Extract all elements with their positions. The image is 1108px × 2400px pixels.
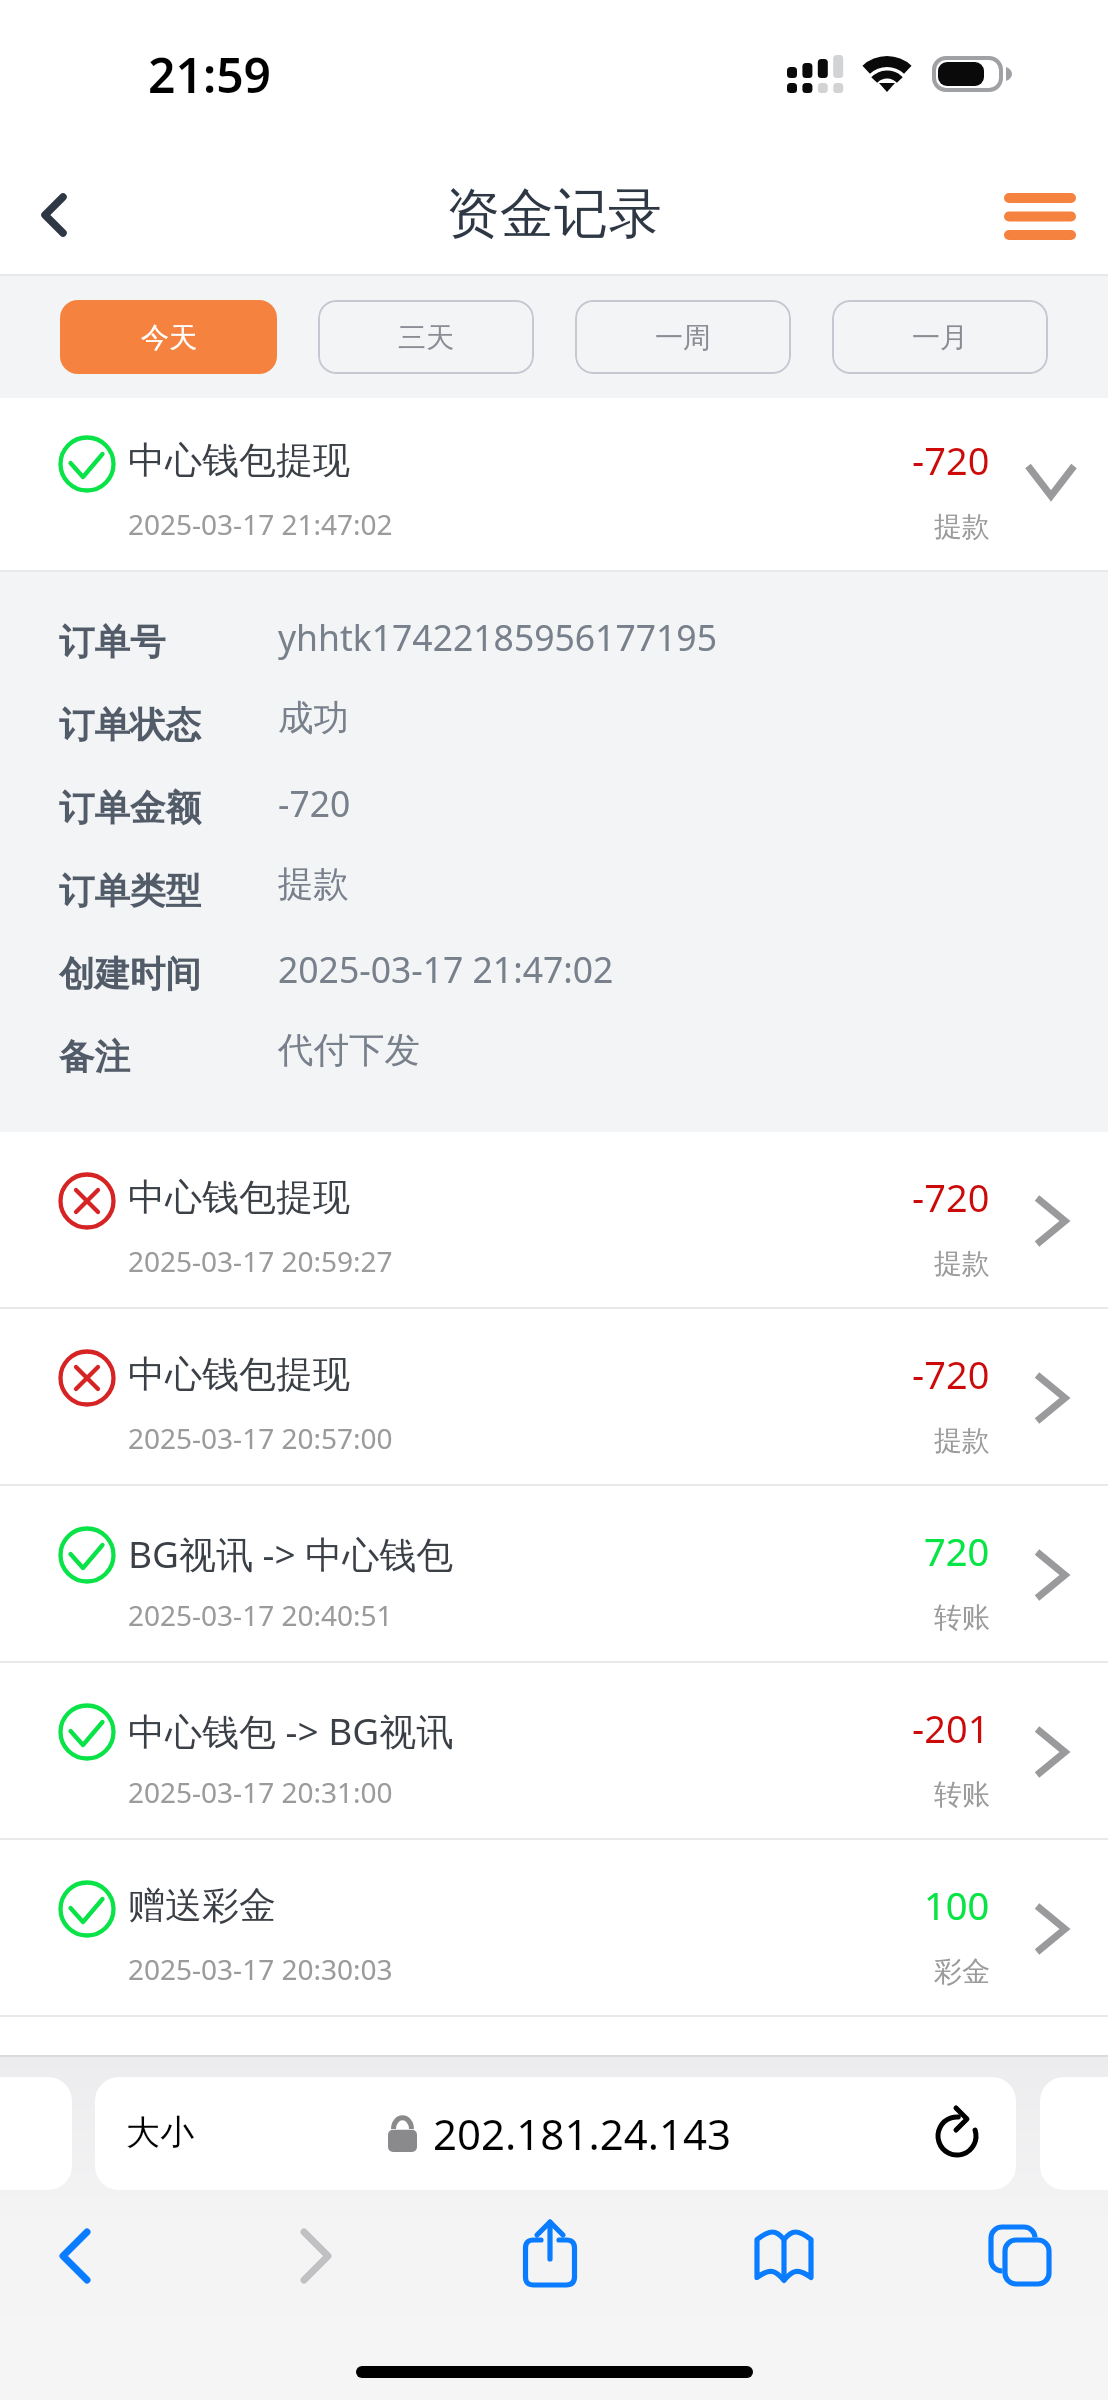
staticText: 订单金额 bbox=[59, 786, 201, 831]
button[interactable]: Share bbox=[500, 2204, 600, 2304]
staticText: 2025-03-17 21:47:02 bbox=[128, 505, 393, 543]
button[interactable]: Menu bbox=[978, 150, 1108, 276]
button[interactable]: 一周 bbox=[575, 300, 791, 374]
button[interactable]: Back bbox=[25, 2206, 125, 2306]
staticText: 今天 bbox=[141, 320, 197, 355]
staticText: 转账 bbox=[934, 1600, 990, 1635]
staticText: 202.181.24.143 bbox=[433, 2105, 732, 2162]
staticText: 提款 bbox=[934, 1423, 990, 1458]
staticText: 中心钱包提现 bbox=[128, 437, 350, 484]
button[interactable]: Back bbox=[0, 150, 110, 276]
staticText: 中心钱包 -> BG视讯 bbox=[128, 1705, 454, 1756]
staticText: 21:59 bbox=[148, 42, 272, 107]
staticText: BG视讯 -> 中心钱包 bbox=[128, 1528, 454, 1579]
staticText: -720 bbox=[912, 1171, 990, 1223]
button[interactable]: Reload bbox=[896, 2077, 1016, 2190]
staticText: yhhtk17422185956177195 bbox=[278, 613, 717, 661]
staticText: 提款 bbox=[934, 509, 990, 544]
staticText: 一月 bbox=[912, 320, 968, 355]
button[interactable]: 中心钱包提现 bbox=[0, 1132, 1108, 1309]
staticText: -201 bbox=[912, 1702, 990, 1754]
staticText: 提款 bbox=[934, 1246, 990, 1281]
button[interactable]: Show details bbox=[990, 1663, 1108, 1840]
button[interactable]: 中心钱包提现 bbox=[0, 398, 1108, 572]
staticText: 订单类型 bbox=[59, 869, 201, 914]
button[interactable]: Collapse details bbox=[990, 398, 1108, 572]
button[interactable]: 大小 bbox=[95, 2077, 1016, 2190]
button[interactable]: Bookmarks bbox=[734, 2206, 834, 2306]
button[interactable]: 中心钱包提现 bbox=[0, 1309, 1108, 1486]
button[interactable]: 今天 bbox=[60, 300, 277, 374]
staticText: 赠送彩金 bbox=[128, 1882, 276, 1929]
staticText: 中心钱包提现 bbox=[128, 1351, 350, 1398]
staticText: 720 bbox=[924, 1525, 990, 1577]
staticText: 中心钱包提现 bbox=[128, 1174, 350, 1221]
staticText: -720 bbox=[278, 779, 351, 827]
staticText: -720 bbox=[912, 434, 990, 486]
staticText: 2025-03-17 20:59:27 bbox=[128, 1242, 393, 1280]
button[interactable]: Tabs bbox=[970, 2206, 1070, 2306]
button[interactable]: Show details bbox=[990, 1840, 1108, 2017]
staticText: 2025-03-17 20:40:51 bbox=[128, 1596, 393, 1634]
button[interactable]: 中心钱包 -> BG视讯 bbox=[0, 1663, 1108, 1840]
button[interactable]: Show details bbox=[990, 1132, 1108, 1309]
button[interactable]: Forward bbox=[266, 2206, 366, 2306]
button[interactable]: 三天 bbox=[318, 300, 534, 374]
button[interactable]: Show details bbox=[990, 1486, 1108, 1663]
staticText: 三天 bbox=[398, 320, 454, 355]
staticText: 2025-03-17 21:47:02 bbox=[278, 945, 614, 993]
button[interactable]: Show details bbox=[990, 1309, 1108, 1486]
button[interactable]: BG视讯 -> 中心钱包 bbox=[0, 1486, 1108, 1663]
staticText: 代付下发 bbox=[278, 1028, 420, 1073]
button[interactable]: 一月 bbox=[832, 300, 1048, 374]
staticText: 成功 bbox=[278, 696, 349, 741]
staticText: 100 bbox=[924, 1879, 990, 1931]
staticText: 转账 bbox=[934, 1777, 990, 1812]
staticText: 2025-03-17 20:57:00 bbox=[128, 1419, 393, 1457]
staticText: 订单状态 bbox=[59, 703, 201, 748]
staticText: 2025-03-17 20:30:03 bbox=[128, 1950, 393, 1988]
staticText: -720 bbox=[912, 1348, 990, 1400]
staticText: 彩金 bbox=[934, 1954, 990, 1989]
staticText: 2025-03-17 20:31:00 bbox=[128, 1773, 393, 1811]
staticText: 备注 bbox=[59, 1035, 130, 1080]
staticText: 资金记录 bbox=[446, 180, 662, 248]
button[interactable]: 赠送彩金 bbox=[0, 1840, 1108, 2017]
staticText: 创建时间 bbox=[59, 952, 201, 997]
staticText: 大小 bbox=[126, 2111, 194, 2154]
staticText: 一周 bbox=[655, 320, 711, 355]
staticText: 提款 bbox=[278, 862, 349, 907]
staticText: 订单号 bbox=[59, 620, 166, 665]
